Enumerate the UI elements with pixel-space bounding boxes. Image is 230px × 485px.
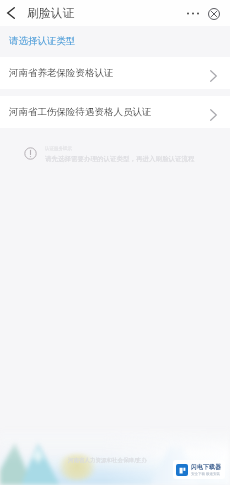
staticText: 安全下载 极速安装 <box>191 471 220 476</box>
button[interactable]: Close <box>205 5 222 22</box>
staticText: 刷脸认证 <box>27 6 75 21</box>
button[interactable]: 河南省养老保险资格认证 <box>0 57 230 89</box>
staticText: 河南省人力资源和社会保障厅 <box>68 457 140 464</box>
staticText: 请先选择需要办理的认证类型，再进入刷脸认证流程 <box>45 155 195 163</box>
staticText: 河南省工伤保险待遇资格人员认证 <box>9 106 152 118</box>
staticText: 认证服务提示 <box>45 146 72 152</box>
staticText: 河南省养老保险资格认证 <box>9 67 114 79</box>
staticText: 主办 <box>136 457 147 464</box>
button[interactable]: More options <box>184 5 201 22</box>
button[interactable]: 河南省工伤保险待遇资格人员认证 <box>0 96 230 128</box>
staticText: 请选择认证类型 <box>9 35 76 47</box>
staticText: 闪电下载器 <box>191 463 221 471</box>
button[interactable]: Back <box>0 0 22 26</box>
button[interactable]: 闪电下载器 <box>173 460 225 479</box>
